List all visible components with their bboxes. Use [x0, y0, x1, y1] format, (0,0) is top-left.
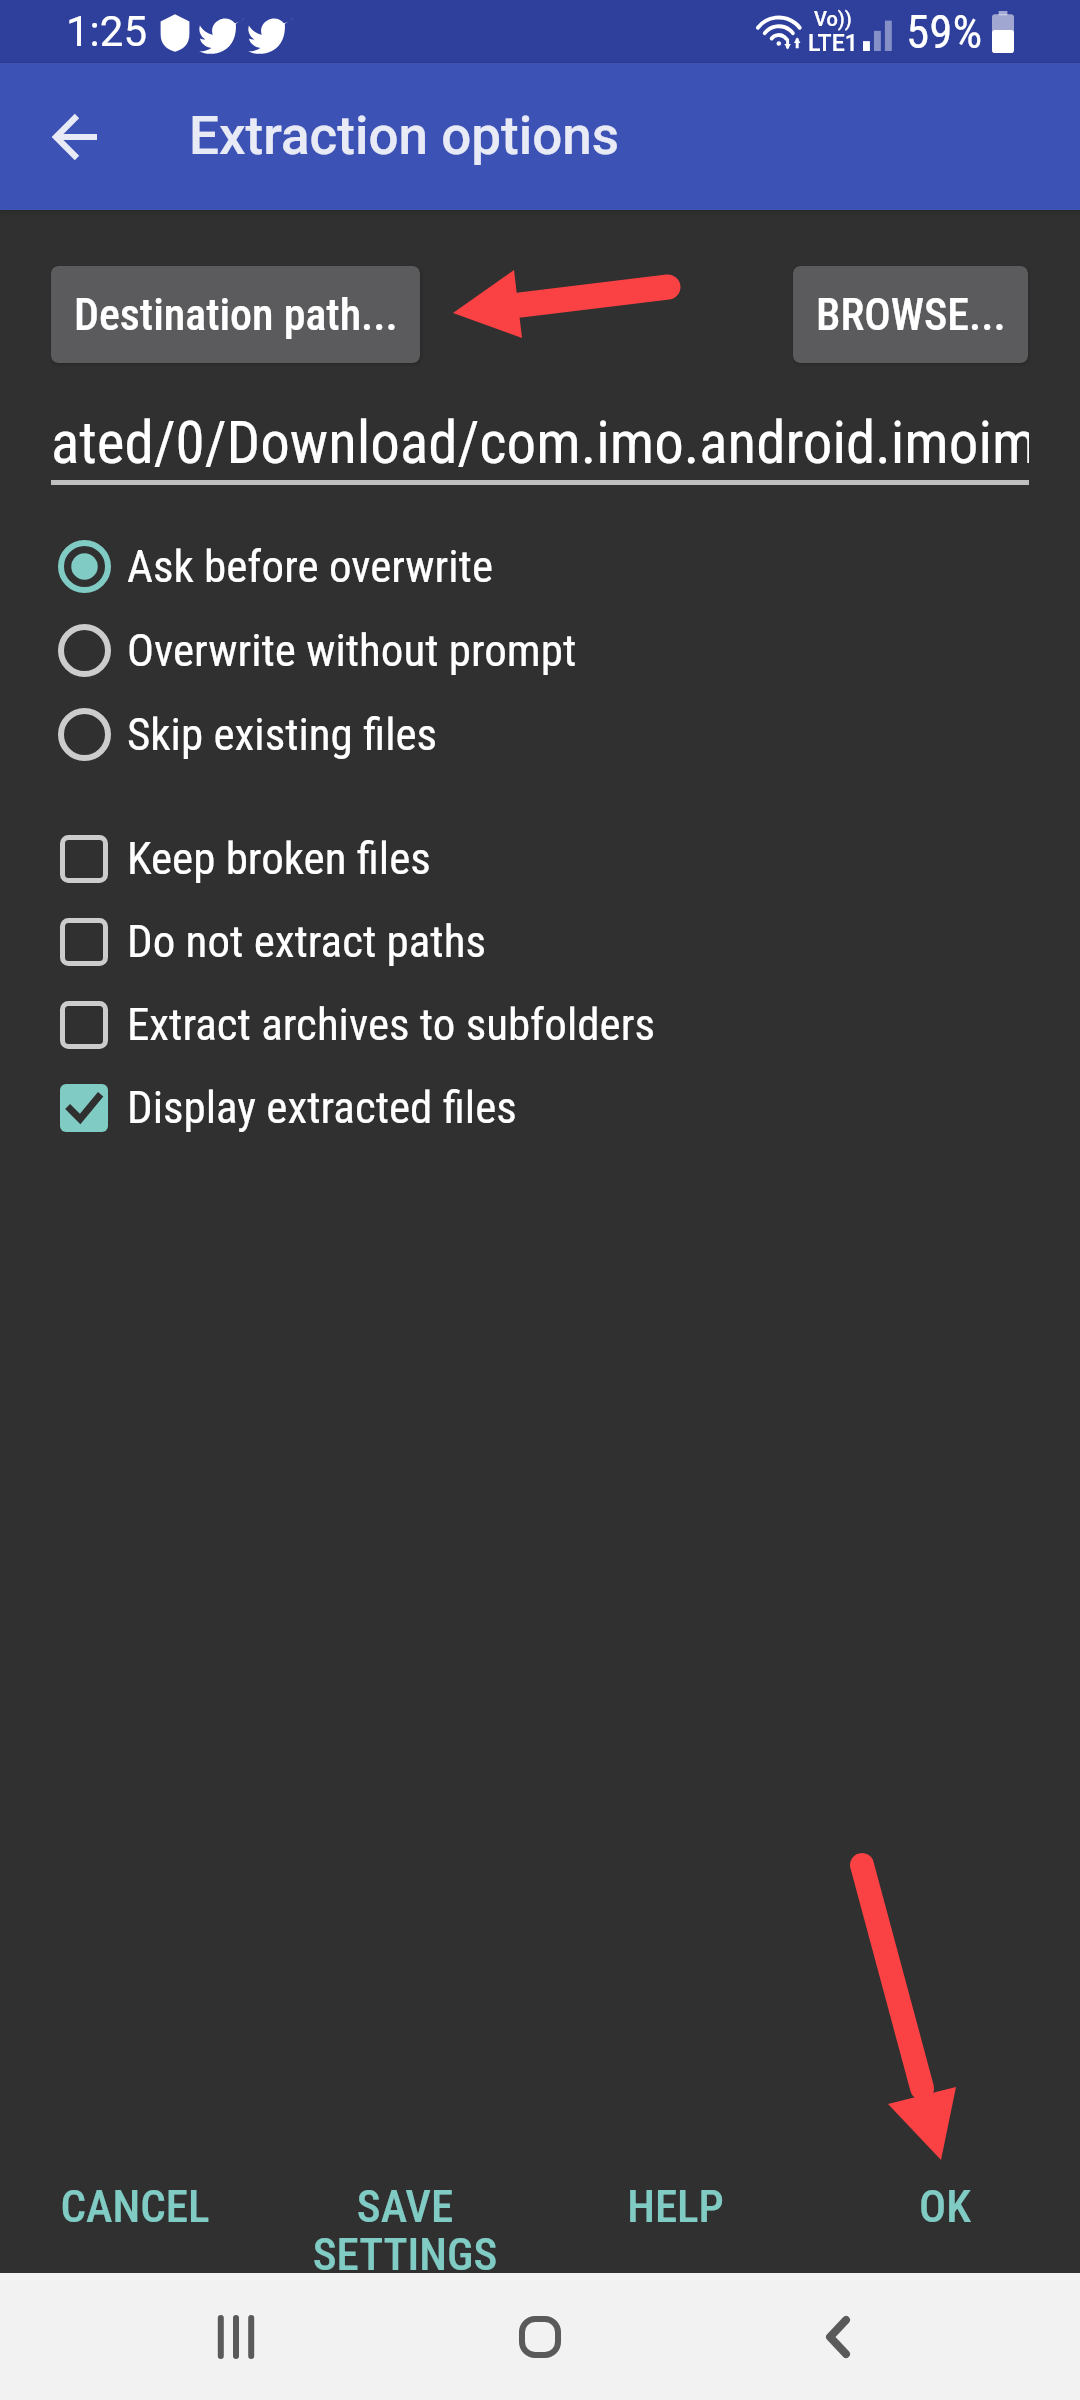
staticText: BROWSE...	[816, 289, 1006, 341]
button[interactable]: Display extracted files	[0, 1066, 1080, 1149]
staticText: 59%	[906, 4, 983, 59]
button[interactable]: CANCEL	[0, 2150, 270, 2273]
button[interactable]: Overwrite without prompt	[0, 608, 1080, 692]
button[interactable]: Skip existing files	[0, 692, 1080, 776]
staticText: Extraction options	[189, 105, 620, 167]
staticText: SAVE SETTINGS	[270, 2180, 540, 2273]
staticText: Vo))	[814, 7, 852, 30]
staticText: 1:25	[66, 7, 147, 56]
staticText: Display extracted files	[127, 1081, 517, 1134]
button[interactable]: HELP	[540, 2150, 810, 2273]
staticText: ated/0/Download/com.imo.android.imoim	[51, 408, 1029, 477]
button[interactable]: Recents	[180, 2281, 292, 2393]
button[interactable]: BROWSE...	[793, 266, 1028, 363]
staticText: CANCEL	[60, 2180, 210, 2233]
staticText: Do not extract paths	[127, 915, 486, 968]
staticText: LTE1	[808, 30, 858, 57]
button[interactable]: Extract archives to subfolders	[0, 983, 1080, 1066]
button[interactable]: Back	[782, 2281, 894, 2393]
button[interactable]: OK	[810, 2150, 1080, 2273]
button[interactable]: Home	[484, 2281, 596, 2393]
button[interactable]: Destination path...	[51, 266, 420, 363]
staticText: Extract archives to subfolders	[127, 998, 655, 1051]
staticText: Skip existing files	[127, 708, 438, 761]
staticText: Destination path...	[74, 289, 398, 341]
button[interactable]: Do not extract paths	[0, 900, 1080, 983]
button[interactable]: Back	[26, 87, 126, 187]
staticText: Keep broken files	[127, 832, 431, 885]
staticText: Overwrite without prompt	[127, 624, 577, 677]
staticText: OK	[919, 2180, 971, 2233]
button[interactable]: Ask before overwrite	[0, 524, 1080, 608]
button[interactable]: Keep broken files	[0, 817, 1080, 900]
staticText: HELP	[627, 2180, 724, 2233]
staticText: Ask before overwrite	[127, 540, 493, 593]
button[interactable]: SAVE SETTINGS	[270, 2150, 540, 2273]
